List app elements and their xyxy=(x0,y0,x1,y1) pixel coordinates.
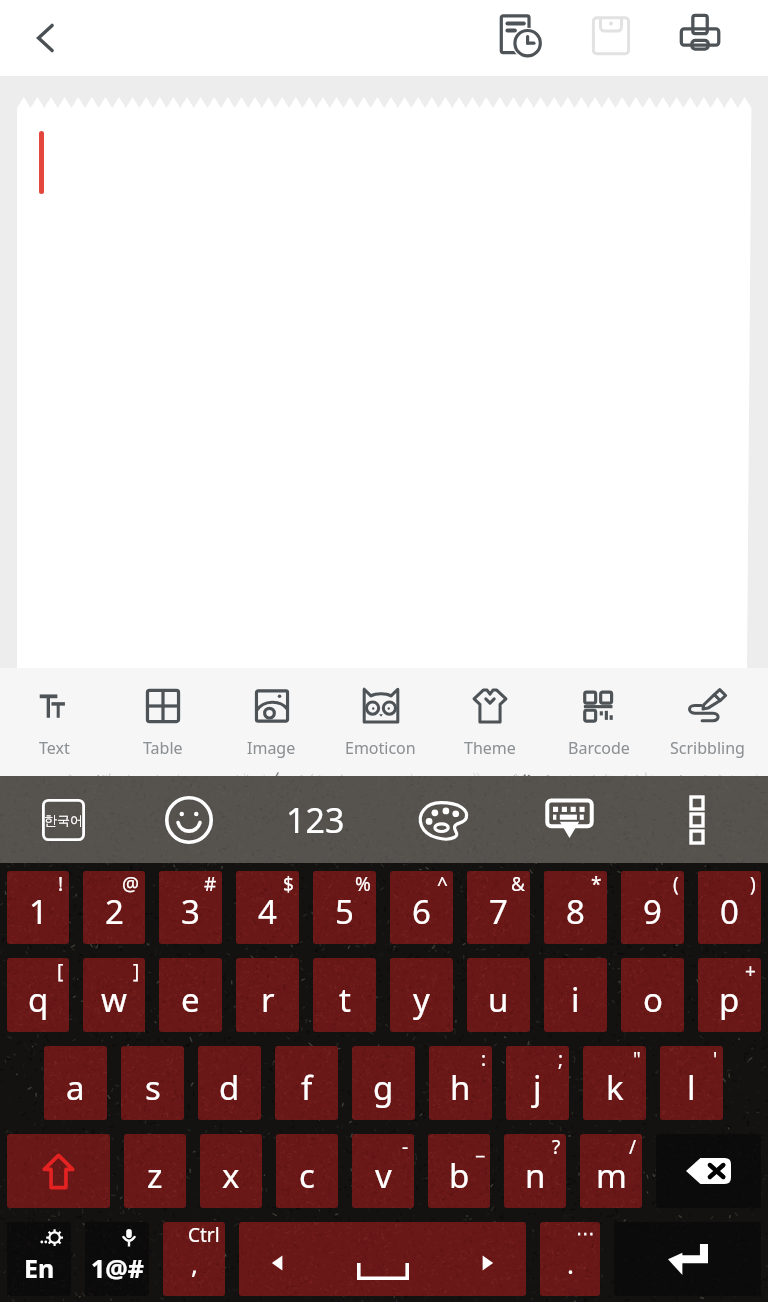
button[interactable]: / xyxy=(580,1134,642,1208)
button[interactable]: Print xyxy=(656,0,746,76)
button[interactable]: Theme xyxy=(379,776,506,863)
button[interactable]: Backspace xyxy=(656,1134,761,1208)
button[interactable]: % xyxy=(313,871,376,944)
staticText: 한국어 xyxy=(44,812,83,828)
button[interactable]: Space xyxy=(308,1222,458,1296)
button[interactable]: Cursor right xyxy=(448,1222,526,1296)
button[interactable]: Image xyxy=(217,668,326,776)
button[interactable]: 1@# xyxy=(85,1222,149,1296)
button[interactable]: Table xyxy=(108,668,217,776)
button[interactable]: a xyxy=(44,1046,107,1120)
staticText: [ xyxy=(57,958,64,984)
button[interactable]: Back xyxy=(16,8,76,68)
button[interactable]: e xyxy=(159,958,222,1032)
staticText: 123 xyxy=(286,797,345,843)
button[interactable]: $ xyxy=(236,871,299,944)
button[interactable]: Hide keyboard xyxy=(506,776,633,863)
staticText: , xyxy=(191,1246,198,1281)
button[interactable]: Numbers xyxy=(252,776,379,863)
button[interactable]: Cursor left xyxy=(239,1222,317,1296)
button[interactable]: ; xyxy=(506,1046,569,1120)
button[interactable]: z xyxy=(124,1134,186,1208)
button[interactable]: + xyxy=(698,958,761,1032)
staticText: x xyxy=(222,1153,240,1198)
button[interactable]: i xyxy=(544,958,607,1032)
staticText: % xyxy=(355,871,371,897)
staticText: En xyxy=(24,1251,55,1285)
button[interactable]: More options xyxy=(633,776,760,863)
button[interactable]: s xyxy=(121,1046,184,1120)
staticText: k xyxy=(606,1065,624,1110)
button[interactable]: o xyxy=(621,958,684,1032)
button[interactable]: : xyxy=(429,1046,492,1120)
staticText: m xyxy=(596,1153,627,1198)
staticText: j xyxy=(533,1065,542,1110)
staticText: ; xyxy=(558,1046,564,1072)
button[interactable]: Ctrl xyxy=(163,1222,225,1296)
button[interactable]: Barcode xyxy=(544,668,653,776)
staticText: " xyxy=(633,1046,641,1072)
button[interactable]: Save xyxy=(566,0,656,76)
button[interactable]: ^ xyxy=(390,871,453,944)
button[interactable]: d xyxy=(198,1046,261,1120)
button[interactable]: c xyxy=(276,1134,338,1208)
button[interactable]: ! xyxy=(7,871,69,944)
staticText: _ xyxy=(476,1134,485,1160)
button[interactable]: Emoji xyxy=(126,776,252,863)
staticText: ⋯ xyxy=(576,1222,595,1244)
staticText: Theme xyxy=(464,737,516,759)
staticText: / xyxy=(629,1134,637,1160)
staticText: + xyxy=(745,958,756,984)
staticText: Ctrl xyxy=(188,1222,220,1248)
button[interactable]: ? xyxy=(504,1134,566,1208)
button[interactable]: Language xyxy=(0,776,126,863)
button[interactable]: u xyxy=(467,958,530,1032)
staticText: 5 xyxy=(335,889,354,934)
staticText: 6 xyxy=(412,889,431,934)
button[interactable]: g xyxy=(352,1046,415,1120)
staticText: s xyxy=(145,1065,161,1110)
button[interactable]: En xyxy=(7,1222,71,1296)
button[interactable]: x xyxy=(200,1134,262,1208)
staticText: v xyxy=(375,1153,392,1198)
button[interactable]: f xyxy=(275,1046,338,1120)
staticText: # xyxy=(204,871,217,897)
staticText: g xyxy=(373,1065,394,1110)
button[interactable]: ⋯ xyxy=(540,1222,600,1296)
button[interactable]: r xyxy=(236,958,299,1032)
button[interactable]: ( xyxy=(621,871,684,944)
staticText: . xyxy=(567,1246,574,1281)
button[interactable]: ] xyxy=(83,958,145,1032)
button[interactable]: Text xyxy=(0,668,108,776)
staticText: r xyxy=(261,977,275,1022)
button[interactable]: [ xyxy=(7,958,69,1032)
staticText: Table xyxy=(143,737,183,759)
button[interactable]: & xyxy=(467,871,530,944)
staticText: ] xyxy=(133,958,140,984)
staticText: 8 xyxy=(566,889,585,934)
button[interactable]: # xyxy=(159,871,222,944)
staticText: 0 xyxy=(720,889,739,934)
button[interactable]: @ xyxy=(83,871,145,944)
staticText: & xyxy=(511,871,525,897)
button[interactable]: Theme xyxy=(435,668,544,776)
button[interactable]: _ xyxy=(428,1134,490,1208)
button[interactable]: Enter xyxy=(614,1222,761,1296)
staticText: c xyxy=(299,1153,315,1198)
staticText: Text xyxy=(39,737,70,759)
button[interactable]: ) xyxy=(698,871,761,944)
button[interactable]: Scribbling xyxy=(653,668,762,776)
button[interactable]: * xyxy=(544,871,607,944)
button[interactable]: - xyxy=(352,1134,414,1208)
button[interactable]: t xyxy=(313,958,376,1032)
staticText: Image xyxy=(247,737,296,759)
button[interactable]: " xyxy=(583,1046,646,1120)
staticText: 1 xyxy=(29,889,48,934)
button[interactable]: Emoticon xyxy=(326,668,435,776)
staticText: f xyxy=(301,1065,313,1110)
button[interactable]: Shift xyxy=(7,1134,110,1208)
button[interactable]: y xyxy=(390,958,453,1032)
button[interactable]: Note history xyxy=(476,0,566,76)
button[interactable]: ' xyxy=(660,1046,723,1120)
staticText: 4 xyxy=(258,889,277,934)
